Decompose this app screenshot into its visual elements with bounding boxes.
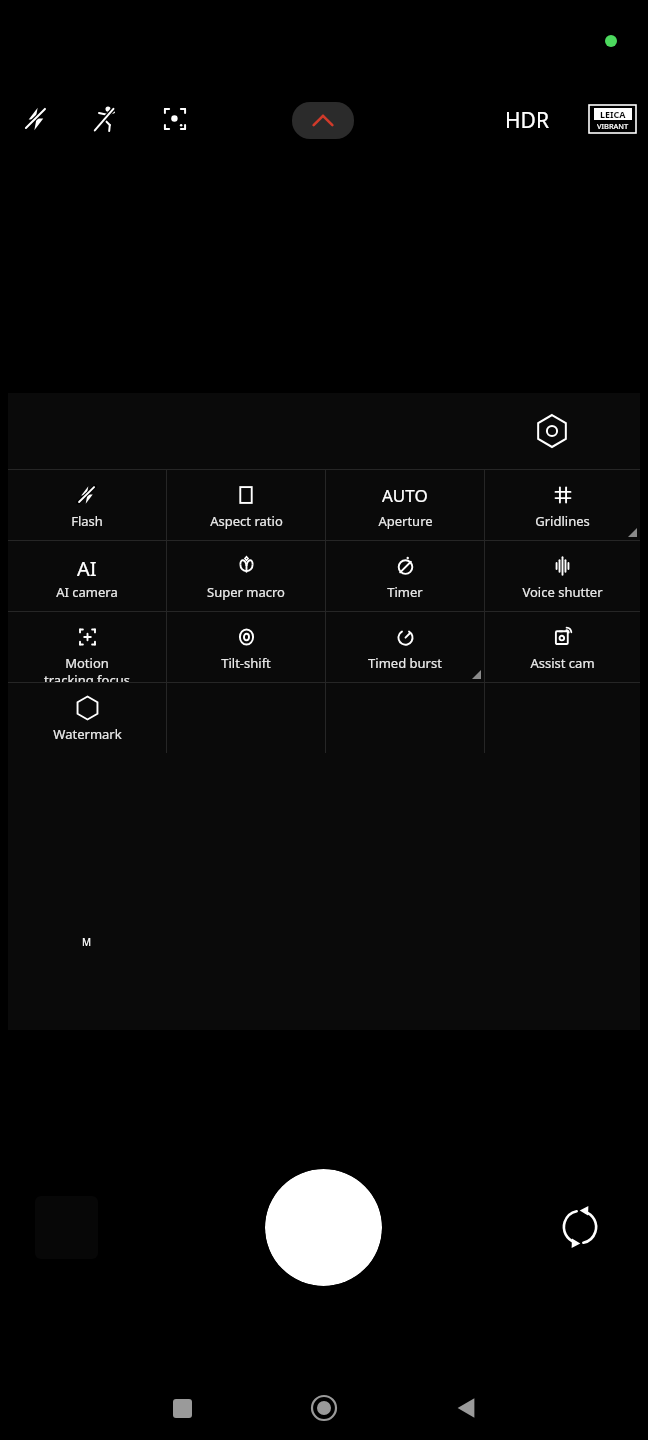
button[interactable]: Leica Vibrant filter xyxy=(589,105,636,133)
staticText: VIBRANT xyxy=(597,121,629,131)
button[interactable]: Scan xyxy=(152,96,198,142)
button[interactable]: Timer xyxy=(326,541,484,611)
button[interactable]: Home xyxy=(294,1378,354,1438)
staticText: AUTO xyxy=(382,484,428,506)
staticText: Motion tracking focus xyxy=(44,654,130,682)
button[interactable]: Switch camera xyxy=(549,1196,611,1258)
button[interactable]: Super macro xyxy=(167,541,325,611)
button[interactable]: AI xyxy=(8,541,166,611)
staticText: Super macro xyxy=(207,583,285,601)
button[interactable]: Voice shutter xyxy=(485,541,640,611)
staticText: AI camera xyxy=(56,583,118,601)
staticText: M xyxy=(82,935,92,949)
button[interactable]: Aspect ratio xyxy=(167,470,325,540)
button[interactable]: Timed burst xyxy=(326,612,484,682)
staticText: AI xyxy=(77,555,97,577)
button[interactable]: Flash off xyxy=(13,96,59,142)
staticText: Aperture xyxy=(378,512,433,530)
button[interactable]: Watermark xyxy=(8,683,166,753)
button[interactable]: Collapse settings xyxy=(292,102,354,139)
staticText: Tilt-shift xyxy=(221,654,271,672)
staticText: Timed burst xyxy=(368,654,442,672)
staticText: Aspect ratio xyxy=(210,512,283,530)
button[interactable]: Back xyxy=(436,1378,496,1438)
button[interactable]: Motion capture off xyxy=(82,96,128,142)
staticText: Flash xyxy=(71,512,103,530)
button[interactable]: Tilt-shift xyxy=(167,612,325,682)
button[interactable]: Motion tracking focus xyxy=(8,612,166,682)
button[interactable]: Recents xyxy=(152,1378,212,1438)
staticText: Timer xyxy=(387,583,423,601)
button[interactable]: Assist cam xyxy=(485,612,640,682)
staticText: Voice shutter xyxy=(522,583,603,601)
staticText: Assist cam xyxy=(530,654,595,672)
button[interactable]: Shutter xyxy=(265,1169,382,1286)
staticText: LEICA xyxy=(600,108,626,120)
button[interactable]: Flash xyxy=(8,470,166,540)
button[interactable]: Gridlines xyxy=(485,470,640,540)
staticText: HDR xyxy=(505,106,549,135)
button[interactable]: AUTO xyxy=(326,470,484,540)
button[interactable]: HDR xyxy=(505,100,549,140)
staticText: Gridlines xyxy=(535,512,590,530)
staticText: Watermark xyxy=(53,725,122,743)
button[interactable]: Settings xyxy=(528,407,576,455)
